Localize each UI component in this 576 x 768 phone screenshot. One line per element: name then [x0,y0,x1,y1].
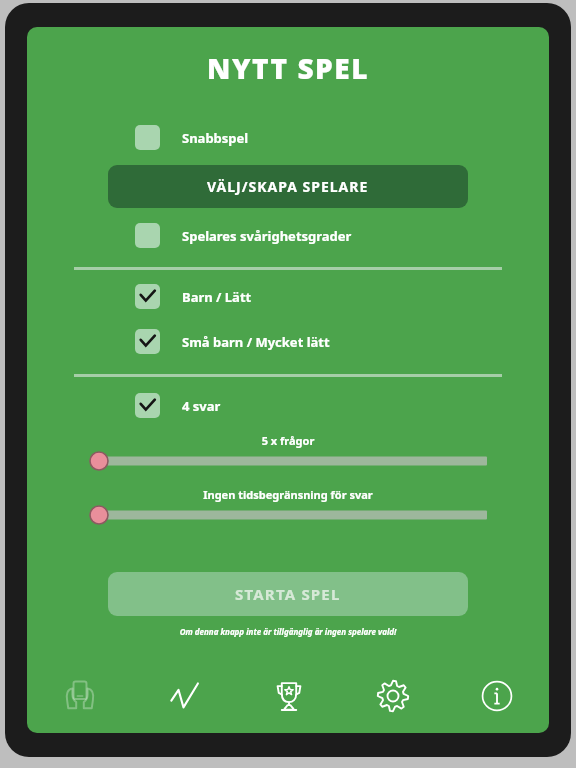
button[interactable]: Information [445,667,549,725]
staticText: 5 x frågor [27,433,549,448]
staticText: STARTA SPEL [235,584,341,604]
button[interactable]: STARTA SPEL [108,572,468,616]
button[interactable]: Spela [27,667,132,725]
staticText: Spelares svårighetsgrader [182,227,352,245]
staticText: Barn / Lätt [182,288,252,306]
button[interactable]: Snabbspel [135,123,529,152]
staticText: 4 svar [182,397,221,415]
button[interactable]: VÄLJ/SKAPA SPELARE [108,165,468,208]
button[interactable]: Statistik [132,667,237,725]
staticText: Små barn / Mycket lätt [182,333,330,351]
staticText: Ingen tidsbegränsning för svar [27,487,549,502]
staticText: VÄLJ/SKAPA SPELARE [207,177,369,196]
staticText: Snabbspel [182,129,249,147]
button[interactable]: Små barn / Mycket lätt [135,327,529,356]
button[interactable] [89,506,487,524]
button[interactable]: Topplista [237,667,341,725]
button[interactable]: Barn / Lätt [135,282,529,311]
button[interactable] [89,452,487,470]
button[interactable]: Spelares svårighetsgrader [135,221,529,250]
button[interactable]: Inställningar [341,667,445,725]
staticText: NYTT SPEL [27,49,549,87]
button[interactable]: 4 svar [135,391,529,420]
staticText: Om denna knapp inte är tillgänglig är in… [27,626,549,637]
